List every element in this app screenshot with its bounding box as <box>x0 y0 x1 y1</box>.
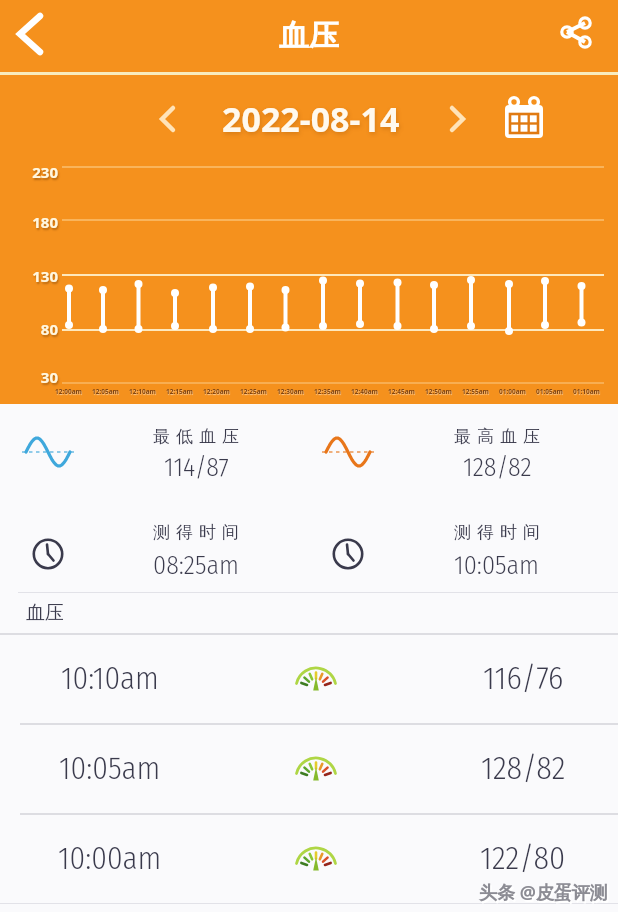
staticText: 180 <box>32 212 58 232</box>
staticText: 130 <box>32 266 58 286</box>
button[interactable]: 10:10am <box>0 633 618 723</box>
staticText: 01:00am <box>499 387 526 396</box>
staticText: 12:35am <box>314 387 341 396</box>
staticText: 128/82 <box>481 749 566 787</box>
staticText: 血压 <box>279 17 339 55</box>
staticText: 10:05am <box>454 550 540 581</box>
staticText: 12:10am <box>129 387 156 396</box>
staticText: 12:40am <box>351 387 378 396</box>
staticText: 01:05am <box>536 387 563 396</box>
button[interactable] <box>436 97 480 141</box>
staticText: 12:55am <box>462 387 489 396</box>
staticText: 122/80 <box>480 839 566 877</box>
staticText: 头条 @皮蛋评测 <box>479 880 608 905</box>
staticText: 80 <box>40 319 58 339</box>
staticText: 10:05am <box>59 750 161 787</box>
staticText: 12:50am <box>425 387 452 396</box>
staticText: 2022-08-14 <box>222 96 400 142</box>
staticText: 12:00am <box>55 387 82 396</box>
staticText: 最低血压 <box>150 426 242 447</box>
staticText: 测得时间 <box>451 522 543 543</box>
button[interactable] <box>6 4 62 60</box>
staticText: 230 <box>32 162 58 182</box>
staticText: 12:05am <box>92 387 119 396</box>
staticText: 12:25am <box>240 387 267 396</box>
staticText: 最高血压 <box>451 426 543 447</box>
staticText: 12:45am <box>388 387 415 396</box>
staticText: 128/82 <box>463 452 532 483</box>
staticText: 01:10am <box>573 387 600 396</box>
button[interactable] <box>145 97 189 141</box>
button[interactable] <box>552 6 604 58</box>
button[interactable] <box>498 92 550 144</box>
staticText: 12:30am <box>277 387 304 396</box>
staticText: 30 <box>40 367 58 387</box>
staticText: 12:15am <box>166 387 193 396</box>
button[interactable]: 10:05am <box>0 723 618 813</box>
staticText: 10:10am <box>61 660 159 697</box>
button[interactable]: 10:00am <box>0 813 618 903</box>
staticText: 08:25am <box>153 550 239 581</box>
staticText: 114/87 <box>164 452 229 483</box>
staticText: 116/76 <box>483 659 564 697</box>
staticText: 测得时间 <box>150 522 242 543</box>
staticText: 血压 <box>26 601 64 625</box>
staticText: 10:00am <box>58 840 162 877</box>
staticText: 12:20am <box>203 387 230 396</box>
